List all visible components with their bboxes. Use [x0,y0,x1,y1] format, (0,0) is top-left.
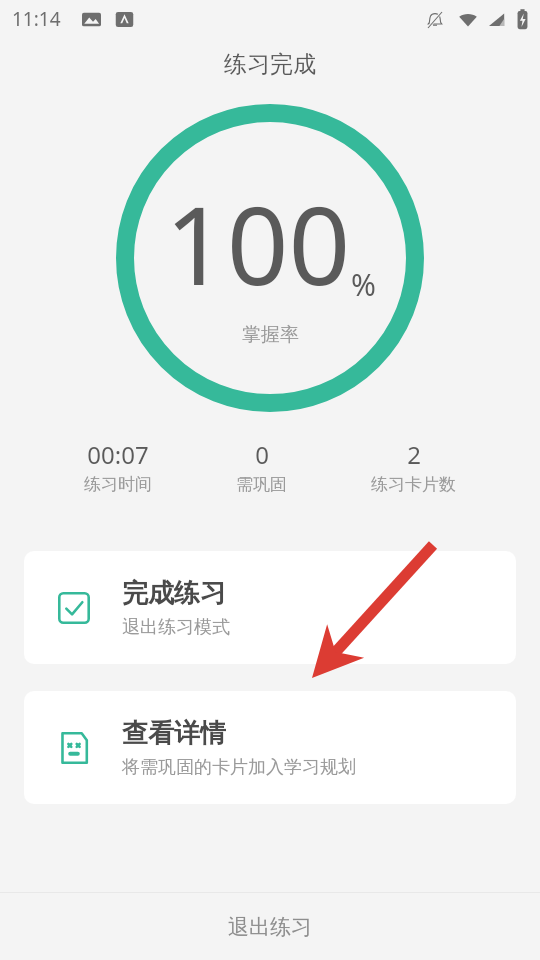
staticText: 练习时间 [84,474,152,495]
staticText: 退出练习模式 [122,616,230,639]
staticText: 练习完成 [224,50,316,79]
staticText: 掌握率 [242,323,299,347]
staticText: 完成练习 [122,577,226,610]
staticText: % [351,264,376,305]
staticText: 0 [255,438,269,471]
button[interactable]: 查看详情 [24,691,516,804]
staticText: 查看详情 [122,717,226,750]
staticText: 100 [165,170,351,317]
button[interactable]: 完成练习 [24,551,516,664]
staticText: 将需巩固的卡片加入学习规划 [122,756,356,779]
staticText: 练习卡片数 [371,474,456,495]
button[interactable]: 退出练习 [0,893,540,960]
staticText: 2 [407,438,421,471]
staticText: 00:07 [87,438,149,471]
staticText: 需巩固 [236,474,287,495]
staticText: 退出练习 [228,914,312,940]
staticText: 11:14 [12,6,61,32]
